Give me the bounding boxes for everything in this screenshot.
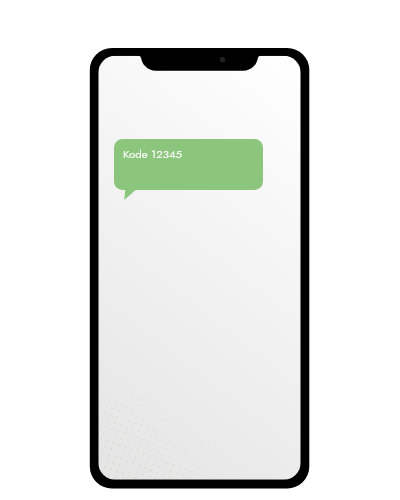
staticText: Kode 12345 (123, 146, 182, 162)
button[interactable]: Message: Kode 12345 (114, 139, 263, 190)
